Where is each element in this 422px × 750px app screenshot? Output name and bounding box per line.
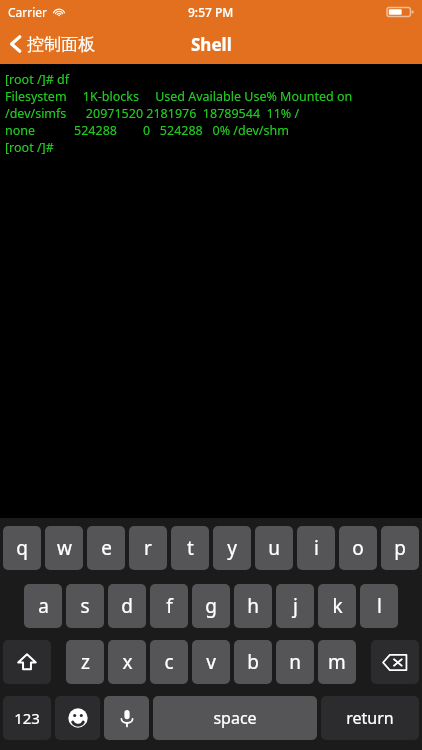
staticText: u xyxy=(268,535,280,561)
staticText: p xyxy=(394,535,406,561)
staticText: g xyxy=(205,593,217,619)
staticText: d xyxy=(121,593,133,619)
button[interactable]: y xyxy=(213,526,251,570)
button[interactable]: return xyxy=(321,696,419,740)
staticText: Shell xyxy=(191,33,232,56)
button[interactable]: b xyxy=(234,640,272,684)
button[interactable]: x xyxy=(108,640,146,684)
staticText: return xyxy=(346,707,394,729)
staticText: b xyxy=(247,649,259,675)
button[interactable]: Dictation xyxy=(104,696,149,740)
button[interactable]: k xyxy=(318,584,356,628)
staticText: t xyxy=(187,535,194,561)
staticText: Filesystem 1K-blocks Used Available Use%… xyxy=(5,88,353,105)
staticText: 控制面板 xyxy=(27,34,95,55)
button[interactable]: Shift xyxy=(3,640,51,684)
staticText: [root /]# xyxy=(5,139,54,156)
button[interactable]: a xyxy=(24,584,62,628)
staticText: z xyxy=(81,649,90,675)
staticText: 9:57 PM xyxy=(188,4,234,20)
staticText: e xyxy=(101,535,112,561)
button[interactable]: m xyxy=(318,640,356,684)
button[interactable]: s xyxy=(66,584,104,628)
button[interactable]: t xyxy=(171,526,209,570)
staticText: k xyxy=(332,593,343,619)
button[interactable]: w xyxy=(45,526,83,570)
button[interactable]: l xyxy=(360,584,398,628)
button[interactable]: 控制面板 xyxy=(8,33,95,55)
staticText: j xyxy=(293,593,298,619)
button[interactable]: h xyxy=(234,584,272,628)
staticText: Carrier xyxy=(8,4,48,20)
staticText: a xyxy=(38,593,49,619)
staticText: h xyxy=(247,593,259,619)
button[interactable]: f xyxy=(150,584,188,628)
staticText: x xyxy=(122,649,133,675)
button[interactable]: z xyxy=(66,640,104,684)
staticText: w xyxy=(57,535,72,561)
button[interactable]: Backspace xyxy=(371,640,419,684)
staticText: v xyxy=(206,649,216,675)
button[interactable]: r xyxy=(129,526,167,570)
staticText: none 524288 0 524288 0% /dev/shm xyxy=(5,122,289,139)
button[interactable]: 123 xyxy=(3,696,51,740)
button[interactable]: u xyxy=(255,526,293,570)
button[interactable]: c xyxy=(150,640,188,684)
button[interactable]: p xyxy=(381,526,419,570)
staticText: 123 xyxy=(14,708,40,728)
staticText: /dev/simfs 20971520 2181976 18789544 11%… xyxy=(5,105,300,122)
button[interactable]: g xyxy=(192,584,230,628)
staticText: c xyxy=(164,649,174,675)
staticText: i xyxy=(314,535,319,561)
button[interactable]: space xyxy=(153,696,317,740)
staticText: [root /]# df xyxy=(5,71,69,88)
staticText: n xyxy=(289,649,301,675)
staticText: m xyxy=(328,649,346,675)
staticText: l xyxy=(377,593,382,619)
button[interactable]: Emoji keyboard xyxy=(55,696,100,740)
staticText: y xyxy=(227,535,237,561)
button[interactable]: j xyxy=(276,584,314,628)
staticText: o xyxy=(352,535,364,561)
button[interactable]: o xyxy=(339,526,377,570)
staticText: q xyxy=(16,535,28,561)
button[interactable]: d xyxy=(108,584,146,628)
button[interactable]: q xyxy=(3,526,41,570)
button[interactable]: i xyxy=(297,526,335,570)
staticText: s xyxy=(80,593,90,619)
button[interactable]: e xyxy=(87,526,125,570)
button[interactable]: n xyxy=(276,640,314,684)
staticText: f xyxy=(166,593,173,619)
staticText: space xyxy=(213,707,257,729)
staticText: r xyxy=(144,535,152,561)
button[interactable]: v xyxy=(192,640,230,684)
